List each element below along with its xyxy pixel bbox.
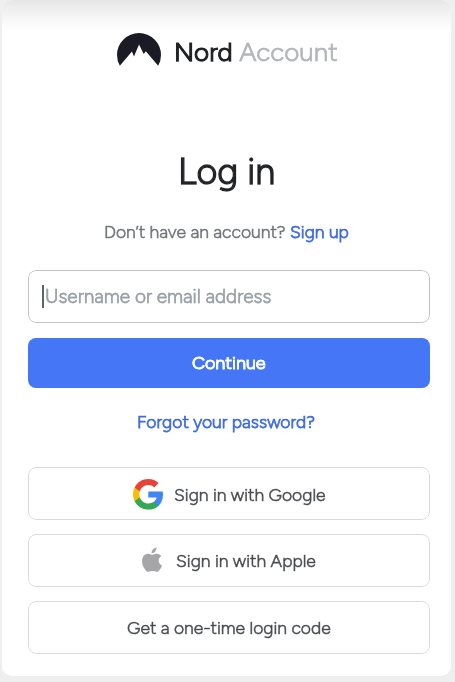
staticText: Sign in with Google	[174, 484, 326, 505]
staticText: Username or email address	[45, 285, 272, 308]
staticText: Nord Account	[174, 36, 338, 67]
staticText: Nord	[174, 36, 233, 67]
staticText: Sign in with Apple	[176, 550, 316, 571]
staticText: Log in	[178, 150, 276, 193]
staticText: Get a one-time login code	[127, 617, 331, 638]
staticText: Continue	[192, 352, 266, 374]
staticText: Nord	[174, 36, 233, 67]
staticText: Continue	[192, 352, 266, 374]
staticText: Get a one-time login code	[127, 617, 331, 638]
button[interactable]: Get a one-time login code	[28, 601, 430, 654]
staticText: Nord Account	[174, 36, 338, 67]
staticText: Sign in with Google	[174, 484, 326, 505]
button[interactable]: Forgot your password?	[137, 411, 316, 432]
staticText: Don’t have an account?	[104, 221, 290, 242]
staticText: Sign up	[290, 221, 349, 242]
button[interactable]: Sign in with Apple	[28, 534, 430, 587]
button[interactable]: Username or email address	[28, 270, 430, 323]
button[interactable]: Continue	[28, 338, 430, 388]
other: Nord logo	[117, 33, 161, 68]
staticText: Forgot your password?	[137, 411, 316, 432]
staticText: Log in	[178, 150, 276, 193]
staticText: Username or email address	[45, 285, 272, 308]
button[interactable]: Sign up	[290, 221, 349, 242]
staticText: Forgot your password?	[137, 411, 316, 432]
staticText: Don’t have an account?	[104, 221, 290, 242]
staticText: Sign in with Apple	[176, 550, 316, 571]
button[interactable]: Sign in with Google	[28, 467, 430, 520]
staticText: Sign up	[290, 221, 349, 242]
